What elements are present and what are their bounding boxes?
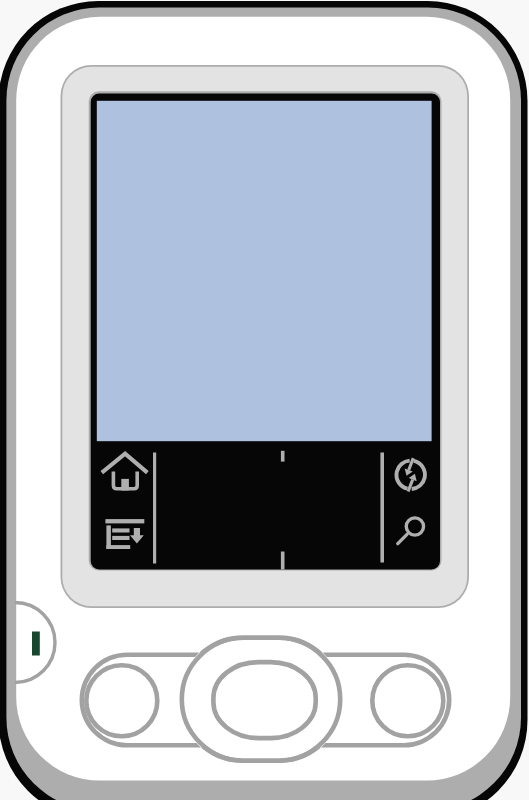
button[interactable]: Next	[371, 664, 445, 738]
button[interactable]: Previous	[85, 664, 159, 738]
button[interactable]: Downloads	[96, 506, 153, 568]
button[interactable]: Power	[14, 603, 56, 683]
button[interactable]: Search	[384, 506, 432, 568]
button[interactable]: Select	[180, 635, 343, 764]
button[interactable]: Sync	[384, 444, 432, 506]
button[interactable]: Home	[96, 444, 153, 506]
